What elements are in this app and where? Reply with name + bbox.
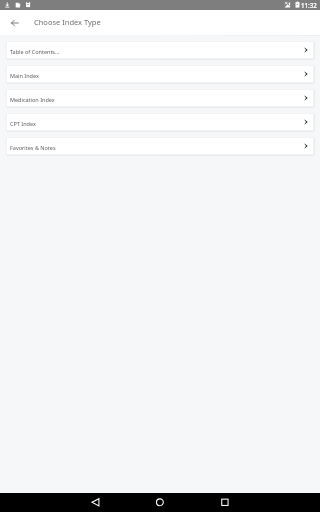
button[interactable]: Favorites & Notes [6, 137, 314, 155]
button[interactable]: Recents [214, 493, 320, 512]
button[interactable]: Medication Index [6, 89, 314, 107]
staticText: Favorites & Notes [10, 144, 303, 151]
staticText: 11:32 [301, 1, 317, 9]
staticText: CPT Index [10, 120, 303, 127]
button[interactable]: CPT Index [6, 113, 314, 131]
staticText: Main Index [10, 72, 303, 79]
staticText: Medication Index [10, 96, 303, 103]
button[interactable]: Back [0, 493, 106, 512]
staticText: Choose Index Type [34, 17, 101, 27]
staticText: Table of Contents… [10, 48, 303, 55]
button[interactable]: Back [0, 10, 30, 35]
button[interactable]: Table of Contents… [6, 41, 314, 59]
button[interactable]: Main Index [6, 65, 314, 83]
button[interactable]: Home [106, 493, 214, 512]
